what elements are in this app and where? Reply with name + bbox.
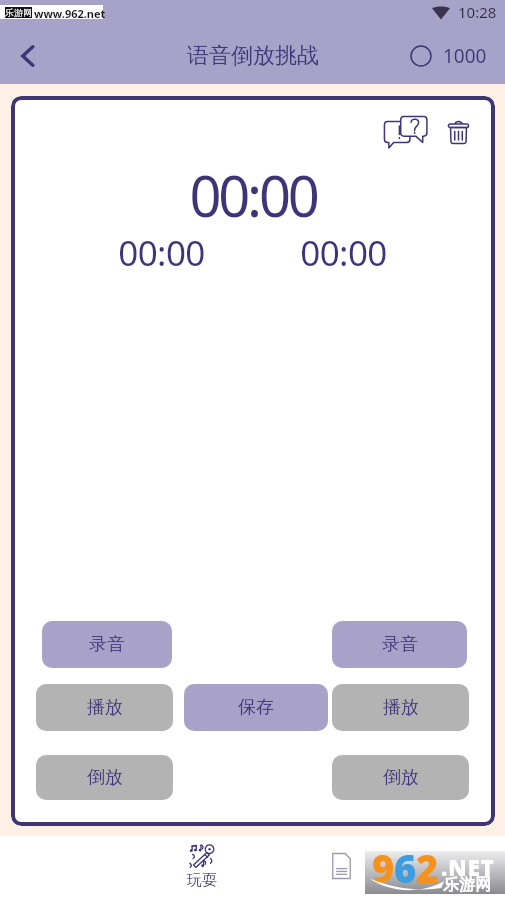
staticText: .NET xyxy=(441,852,495,882)
button[interactable]: 玩耍 xyxy=(177,843,227,895)
staticText: 播放 xyxy=(383,696,419,719)
staticText: 00:00 xyxy=(283,229,404,277)
button[interactable]: 保存 xyxy=(184,684,328,731)
staticText: 6 xyxy=(394,842,416,885)
staticText: 保存 xyxy=(238,696,274,719)
staticText: 倒放 xyxy=(383,766,419,789)
staticText: 播放 xyxy=(87,696,123,719)
button[interactable]: Records xyxy=(324,848,358,884)
button[interactable]: Help xyxy=(380,112,432,152)
staticText: 00:00 xyxy=(101,229,222,277)
button[interactable]: Delete xyxy=(440,114,476,150)
button[interactable]: 1000 xyxy=(408,43,487,69)
staticText: 2 xyxy=(416,842,438,885)
staticText: 录音 xyxy=(382,633,418,656)
staticText: 9 xyxy=(372,842,394,885)
staticText: 倒放 xyxy=(87,766,123,789)
button[interactable]: 录音 xyxy=(332,621,467,668)
staticText: 玩耍 xyxy=(177,871,227,890)
staticText: 乐游网 xyxy=(443,875,491,895)
button[interactable]: 倒放 xyxy=(332,755,469,800)
staticText: www.962.net xyxy=(34,6,106,20)
staticText: 语音倒放挑战 xyxy=(187,42,319,70)
staticText: 录音 xyxy=(89,633,125,656)
button[interactable]: 倒放 xyxy=(36,755,173,800)
button[interactable]: Back xyxy=(0,28,56,84)
button[interactable]: 播放 xyxy=(36,684,173,731)
button[interactable]: 录音 xyxy=(42,621,172,668)
staticText: 1000 xyxy=(443,43,487,69)
staticText: 00:00 xyxy=(11,157,495,233)
staticText: 乐游网 xyxy=(5,7,32,18)
staticText: 10:28 xyxy=(458,2,497,22)
button[interactable]: 播放 xyxy=(332,684,469,731)
